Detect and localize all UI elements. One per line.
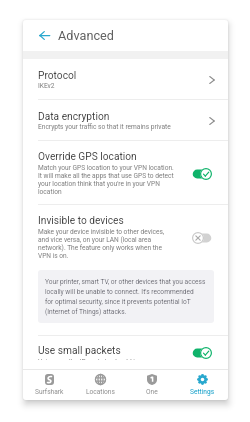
staticText: Invisible to devices xyxy=(38,215,124,227)
staticText: Protocol xyxy=(38,70,77,82)
button[interactable]: Use small packets xyxy=(23,336,228,369)
staticText: Using smaller IP packets should improve … xyxy=(38,358,176,360)
staticText: Override GPS location xyxy=(38,151,137,163)
button[interactable]: Back xyxy=(31,20,57,51)
staticText: One xyxy=(146,388,158,396)
staticText: IKEv2 xyxy=(38,82,55,90)
staticText: Data encryption xyxy=(38,111,110,123)
staticText: Match your GPS location to your VPN loca… xyxy=(38,164,176,196)
button[interactable]: Data encryption xyxy=(23,100,228,140)
staticText: Use small packets xyxy=(38,345,121,357)
button[interactable]: Override GPS location xyxy=(23,141,228,204)
staticText: Make your device invisible to other devi… xyxy=(38,228,176,260)
staticText: Your printer, smart TV, or other devices… xyxy=(45,278,206,315)
staticText: Surfshark xyxy=(35,388,64,396)
button[interactable]: One xyxy=(126,370,177,400)
button[interactable]: On xyxy=(192,347,212,359)
staticText: Encrypts your traffic so that it remains… xyxy=(38,123,171,131)
staticText: Locations xyxy=(86,388,115,396)
button[interactable]: Off xyxy=(192,232,212,244)
button[interactable]: Invisible to devices xyxy=(23,205,228,270)
staticText: Advanced xyxy=(58,28,114,43)
staticText: Settings xyxy=(190,388,215,396)
button[interactable]: Locations xyxy=(75,370,126,400)
button[interactable]: On xyxy=(192,168,212,180)
button[interactable]: Protocol xyxy=(23,59,228,99)
button[interactable]: Surfshark xyxy=(23,370,75,400)
button[interactable]: Settings xyxy=(177,370,228,400)
